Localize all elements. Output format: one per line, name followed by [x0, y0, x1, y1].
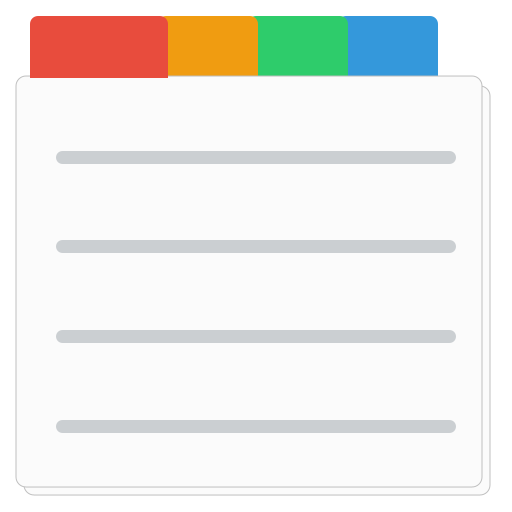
button[interactable]: Blue section [338, 16, 438, 76]
button[interactable]: Green section [248, 16, 348, 76]
button[interactable]: Red section [30, 16, 168, 78]
button[interactable]: Orange section [158, 16, 258, 76]
